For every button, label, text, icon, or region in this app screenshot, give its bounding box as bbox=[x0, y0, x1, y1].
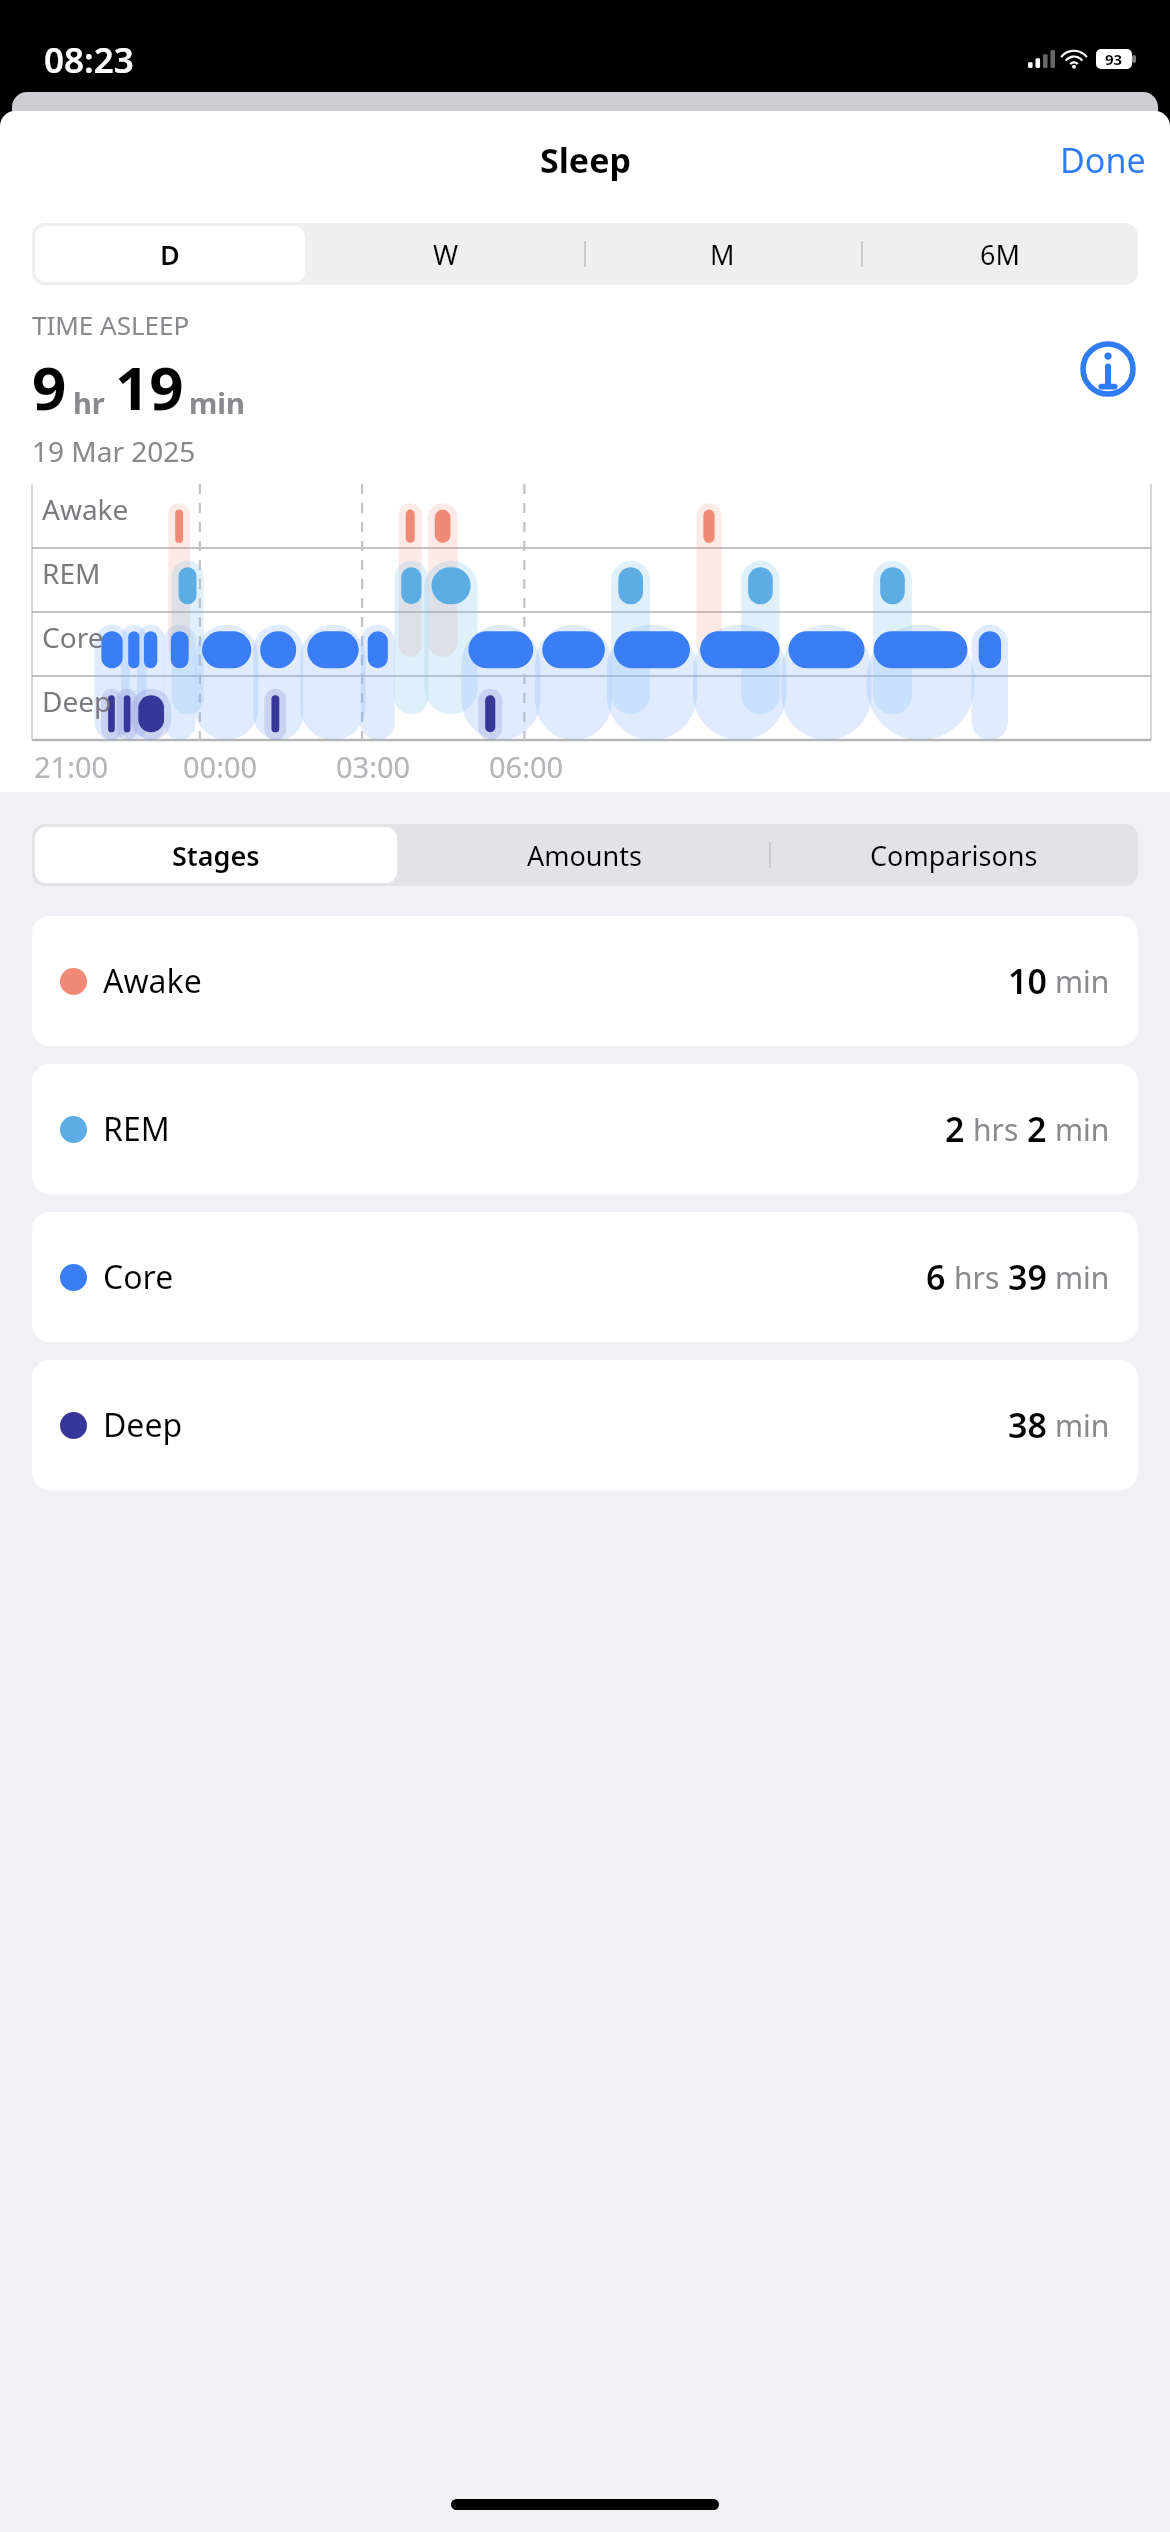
staticText: min bbox=[189, 383, 245, 422]
staticText: M bbox=[710, 236, 735, 273]
staticText: min bbox=[1055, 1405, 1110, 1446]
staticText: 00:00 bbox=[183, 747, 258, 786]
button[interactable]: Done bbox=[1036, 125, 1170, 195]
staticText: Done bbox=[1060, 137, 1146, 183]
staticText: 10 bbox=[1008, 958, 1047, 1004]
staticText: 38 bbox=[1008, 1402, 1047, 1448]
staticText: hrs bbox=[973, 1109, 1019, 1150]
staticText: Core bbox=[103, 1255, 174, 1299]
staticText: TIME ASLEEP bbox=[32, 307, 190, 342]
button[interactable]: Core bbox=[32, 1212, 1138, 1342]
staticText: W bbox=[433, 236, 459, 273]
staticText: 03:00 bbox=[336, 747, 411, 786]
staticText: Comparisons bbox=[870, 837, 1038, 874]
staticText: REM bbox=[42, 554, 101, 592]
staticText: 2 bbox=[1027, 1106, 1047, 1152]
staticText: Sleep bbox=[540, 137, 631, 183]
button[interactable]: Deep bbox=[32, 1360, 1138, 1490]
staticText: hrs bbox=[954, 1257, 1000, 1298]
button[interactable]: 6M bbox=[861, 223, 1138, 285]
button[interactable]: D bbox=[32, 223, 308, 285]
button[interactable]: W bbox=[308, 223, 584, 285]
button[interactable]: Stages bbox=[32, 824, 400, 886]
button[interactable]: Information bbox=[1072, 333, 1144, 405]
staticText: 21:00 bbox=[34, 747, 109, 786]
staticText: min bbox=[1055, 961, 1110, 1002]
staticText: 19 bbox=[115, 346, 184, 428]
staticText: 6 bbox=[926, 1254, 946, 1300]
staticText: 6M bbox=[980, 236, 1020, 273]
staticText: 08:23 bbox=[44, 36, 134, 84]
button[interactable]: M bbox=[584, 223, 861, 285]
staticText: 93 bbox=[1105, 49, 1123, 69]
staticText: Amounts bbox=[527, 837, 642, 874]
staticText: Deep bbox=[42, 682, 112, 720]
staticText: Awake bbox=[103, 959, 202, 1003]
staticText: Awake bbox=[42, 490, 129, 528]
staticText: 19 Mar 2025 bbox=[32, 432, 196, 470]
staticText: min bbox=[1055, 1109, 1110, 1150]
button[interactable]: Comparisons bbox=[769, 824, 1138, 886]
staticText: Stages bbox=[172, 837, 260, 874]
staticText: 39 bbox=[1008, 1254, 1047, 1300]
staticText: 2 bbox=[945, 1106, 965, 1152]
staticText: min bbox=[1055, 1257, 1110, 1298]
button[interactable]: Awake bbox=[32, 916, 1138, 1046]
staticText: REM bbox=[103, 1107, 170, 1151]
staticText: 9 bbox=[32, 346, 67, 428]
staticText: D bbox=[160, 236, 180, 273]
staticText: Deep bbox=[103, 1403, 183, 1447]
button[interactable]: REM bbox=[32, 1064, 1138, 1194]
staticText: hr bbox=[73, 383, 105, 422]
button[interactable]: Amounts bbox=[400, 824, 769, 886]
staticText: 06:00 bbox=[489, 747, 564, 786]
staticText: Core bbox=[42, 618, 104, 656]
